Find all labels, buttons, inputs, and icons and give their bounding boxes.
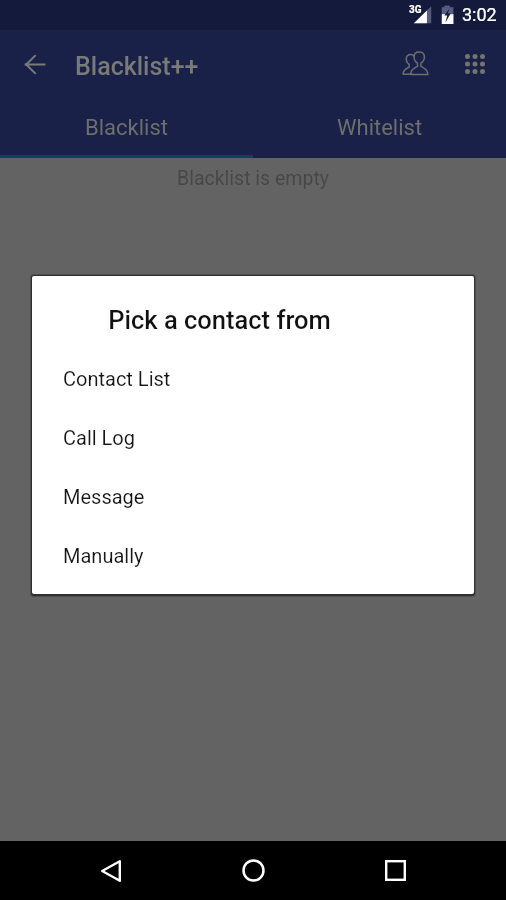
button[interactable]: More apps (446, 34, 506, 94)
staticText: Manually (63, 544, 144, 567)
button[interactable]: Blacklist (0, 98, 253, 158)
button[interactable]: Contact List (32, 349, 474, 408)
staticText: Pick a contact from (37, 305, 402, 335)
button[interactable]: Call Log (32, 408, 474, 467)
staticText: Blacklist is empty (0, 167, 506, 190)
staticText: 3G (409, 4, 422, 16)
button[interactable]: Recent apps (365, 841, 425, 900)
button[interactable]: Whitelist (253, 98, 506, 158)
button[interactable]: Manually (32, 526, 474, 585)
staticText: Blacklist (85, 115, 168, 141)
staticText: 3:02 (462, 4, 497, 25)
button[interactable]: Contacts (386, 34, 446, 94)
button[interactable]: Home (223, 841, 283, 900)
staticText: Contact List (63, 367, 171, 390)
button[interactable]: Message (32, 467, 474, 526)
staticText: Call Log (63, 426, 135, 449)
staticText: Blacklist++ (75, 52, 199, 81)
button[interactable]: Back (81, 841, 141, 900)
staticText: Whitelist (337, 115, 423, 141)
button[interactable]: Navigate up (0, 30, 68, 98)
staticText: Message (63, 485, 145, 508)
